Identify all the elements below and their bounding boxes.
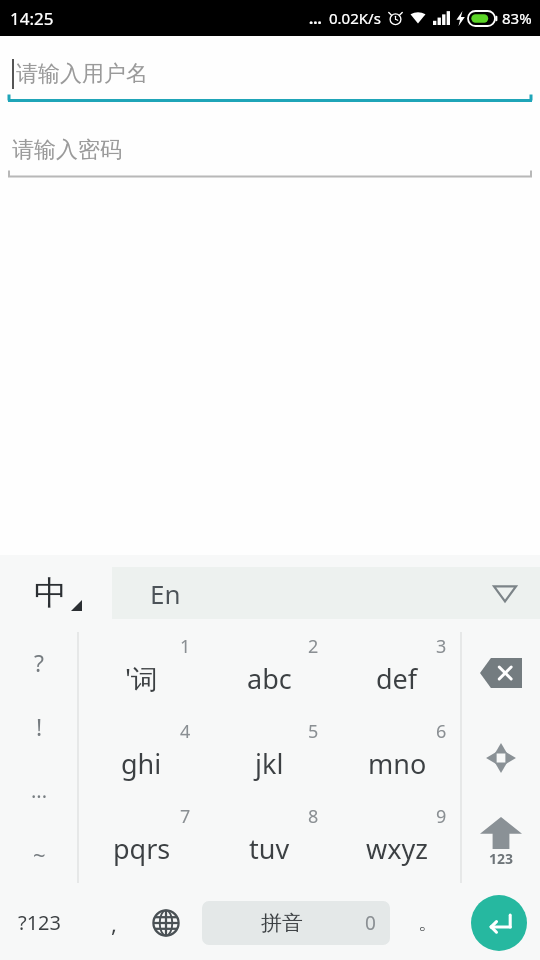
staticText: wxyz <box>366 830 428 867</box>
staticText: ~ <box>33 839 46 869</box>
button[interactable]: ~ <box>0 822 78 885</box>
staticText: 。 <box>418 910 438 935</box>
button[interactable]: Switch language <box>138 885 194 960</box>
staticText: 0 <box>365 910 376 936</box>
button[interactable]: 4 <box>78 715 205 800</box>
button[interactable]: 3 <box>333 630 461 715</box>
button[interactable]: Chinese input <box>0 555 112 630</box>
staticText: ! <box>36 711 43 742</box>
staticText: 中 <box>34 572 67 614</box>
staticText: pqrs <box>113 830 171 867</box>
button[interactable]: 请输入用户名 <box>0 46 540 102</box>
staticText: tuv <box>249 830 290 867</box>
staticText: , <box>111 908 117 938</box>
button[interactable]: 2 <box>205 630 333 715</box>
button[interactable]: ?123 <box>0 885 78 960</box>
button[interactable]: Backspace <box>461 630 540 715</box>
staticText: mno <box>368 745 427 782</box>
button[interactable]: ! <box>0 694 78 758</box>
button[interactable]: 8 <box>205 800 333 885</box>
staticText: def <box>376 660 418 697</box>
staticText: 2 <box>308 634 319 659</box>
button[interactable]: 6 <box>333 715 461 800</box>
staticText: 3 <box>436 634 447 659</box>
staticText: 83% <box>502 8 532 28</box>
staticText: 0.02K/s <box>329 8 381 28</box>
button[interactable]: Enter <box>471 895 527 951</box>
staticText: ? <box>34 647 44 678</box>
button[interactable]: 9 <box>333 800 461 885</box>
button[interactable]: Numbers and symbols <box>461 800 540 885</box>
button[interactable]: 。 <box>400 885 456 960</box>
staticText: '词 <box>125 660 159 697</box>
staticText: 4 <box>180 719 191 744</box>
button[interactable]: 5 <box>205 715 333 800</box>
button[interactable]: 请输入密码 <box>0 122 540 178</box>
staticText: ... <box>309 8 322 28</box>
staticText: jkl <box>255 745 284 782</box>
button[interactable]: En <box>112 567 540 619</box>
staticText: En <box>150 576 181 611</box>
button[interactable]: , <box>90 885 138 960</box>
button[interactable]: ... <box>0 758 78 822</box>
staticText: ghi <box>121 745 162 782</box>
staticText: ?123 <box>18 909 61 936</box>
staticText: 5 <box>308 719 319 744</box>
staticText: 请输入用户名 <box>16 60 148 88</box>
staticText: 123 <box>489 849 514 868</box>
button[interactable]: 7 <box>78 800 205 885</box>
staticText: 8 <box>308 804 319 829</box>
staticText: 6 <box>436 719 447 744</box>
button[interactable]: 拼音 <box>202 901 390 945</box>
staticText: 9 <box>436 804 447 829</box>
staticText: 请输入密码 <box>12 136 122 164</box>
button[interactable]: 1 <box>78 630 205 715</box>
button[interactable]: Move cursor <box>461 715 540 800</box>
staticText: ... <box>31 777 48 804</box>
staticText: 14:25 <box>10 7 54 30</box>
staticText: 7 <box>180 804 191 829</box>
button[interactable]: ? <box>0 630 78 694</box>
staticText: 1 <box>180 634 191 659</box>
staticText: abc <box>247 660 292 697</box>
staticText: 拼音 <box>261 910 303 936</box>
